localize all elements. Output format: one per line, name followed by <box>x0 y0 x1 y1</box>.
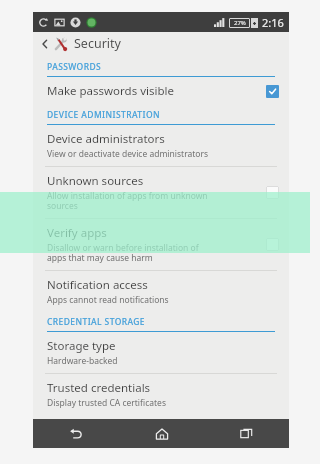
staticText: 27% <box>234 19 246 27</box>
button[interactable]: Make passwords visible, on <box>266 85 279 98</box>
button[interactable]: Device administrators <box>33 125 289 167</box>
button[interactable]: Back <box>33 32 289 55</box>
button[interactable]: Verify apps, off <box>266 238 279 251</box>
staticText: Security <box>74 35 121 52</box>
button[interactable]: Home <box>119 419 204 448</box>
button[interactable]: Notification access <box>33 271 289 312</box>
staticText: Disallow or warn before installation of … <box>47 242 199 264</box>
staticText: Trusted credentials <box>47 380 151 396</box>
staticText: Notification access <box>47 277 148 293</box>
staticText: 2:16 <box>262 15 284 30</box>
button[interactable]: Make passwords visible <box>33 77 289 105</box>
staticText: Hardware-backed <box>47 355 118 367</box>
button[interactable]: Recent apps <box>204 419 289 448</box>
staticText: View or deactivate device administrators <box>47 148 209 160</box>
button[interactable]: Verify apps <box>33 219 289 271</box>
button[interactable]: Back <box>38 37 51 50</box>
staticText: Display trusted CA certificates <box>47 397 166 409</box>
staticText: Apps cannot read notifications <box>47 294 169 306</box>
staticText: Make passwords visible <box>47 83 174 99</box>
staticText: Device administrators <box>47 131 165 147</box>
staticText: Storage type <box>47 338 116 354</box>
staticText: Allow installation of apps from unknown … <box>47 190 208 212</box>
staticText: CREDENTIAL STORAGE <box>47 316 145 328</box>
staticText: Verify apps <box>47 225 107 241</box>
staticText: Unknown sources <box>47 173 144 189</box>
staticText: DEVICE ADMINISTRATION <box>47 109 160 121</box>
staticText: PASSWORDS <box>47 61 102 73</box>
button[interactable]: Storage type <box>33 332 289 374</box>
button[interactable]: Trusted credentials <box>33 374 289 415</box>
button[interactable]: Unknown sources, off <box>266 186 279 199</box>
button[interactable]: Unknown sources <box>33 167 289 219</box>
button[interactable]: Back <box>33 419 119 448</box>
